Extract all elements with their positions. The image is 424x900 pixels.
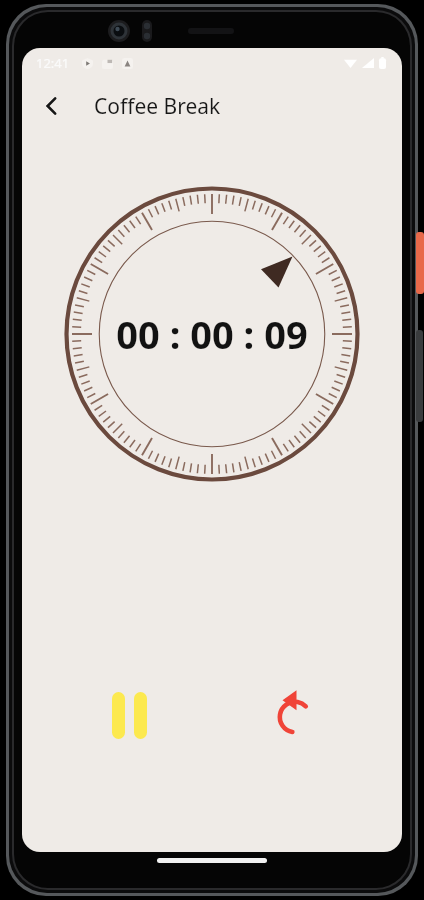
button[interactable]: Reset — [266, 686, 324, 744]
staticText: 12:41 — [36, 54, 70, 72]
staticText: Coffee Break — [94, 92, 221, 121]
staticText: 00 : 00 : 09 — [116, 308, 308, 360]
button[interactable]: Pause — [100, 686, 158, 744]
button[interactable]: Back — [30, 84, 74, 128]
